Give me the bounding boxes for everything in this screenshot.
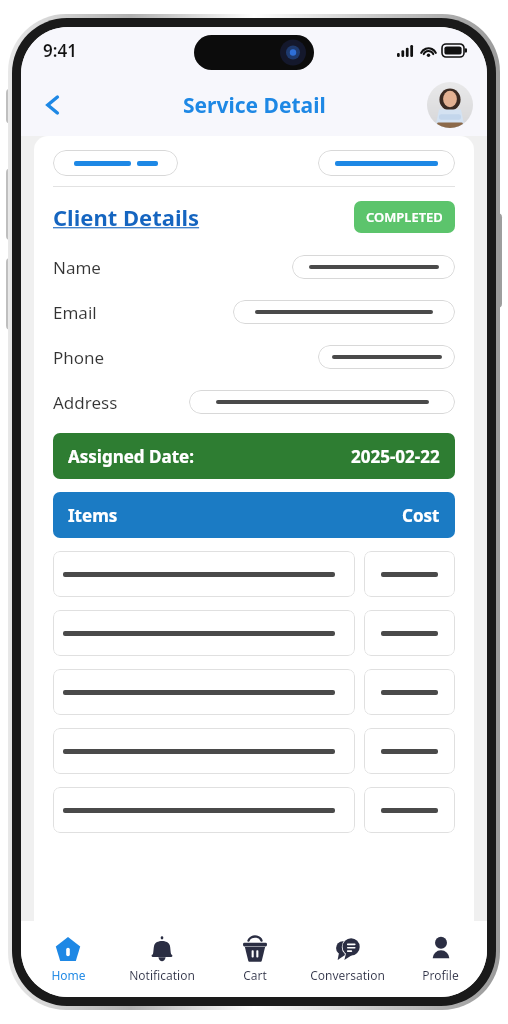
staticText: COMPLETED [366,208,443,226]
staticText: Profile [422,967,459,983]
button[interactable]: Profile avatar [427,82,473,128]
staticText: Email [53,301,97,324]
staticText: Home [51,967,86,983]
button[interactable]: Item [53,669,355,715]
staticText: Conversation [310,967,385,983]
staticText: Phone [53,346,105,369]
staticText: Name [53,256,101,279]
button[interactable]: COMPLETED [354,201,455,233]
button[interactable]: Cost [364,787,455,833]
button[interactable]: Conversation [301,921,394,997]
button[interactable]: Status chip [318,150,455,176]
button[interactable]: Home [21,921,115,997]
button[interactable]: Reference chip [53,150,178,176]
staticText: Service Detail [183,91,326,120]
staticText: Address [53,391,118,414]
button[interactable]: Cost [364,728,455,774]
staticText: 9:41 [43,39,77,62]
staticText: 2025-02-22 [351,445,440,468]
staticText: Assigned Date: [68,445,194,468]
button[interactable]: Cost [364,610,455,656]
button[interactable]: Notification [115,921,208,997]
button[interactable]: Item [53,551,355,597]
button[interactable]: Cost [364,551,455,597]
button[interactable]: Cost [364,669,455,715]
staticText: Cost [402,504,440,527]
button[interactable]: Item [53,610,355,656]
button[interactable]: Address [189,390,455,414]
button[interactable]: Profile [394,921,487,997]
staticText: Items [68,504,118,527]
button[interactable]: Client Details [53,202,200,232]
button[interactable]: Cart [208,921,301,997]
button[interactable]: Item [53,728,355,774]
button[interactable]: Back [31,83,75,127]
button[interactable]: Item [53,787,355,833]
button[interactable]: Phone [318,345,455,369]
button[interactable]: Name [292,255,455,279]
button[interactable]: Items [53,492,455,538]
staticText: Cart [243,967,267,983]
button[interactable]: Email [233,300,455,324]
button[interactable]: Assigned Date: [53,433,455,479]
staticText: Notification [129,967,195,983]
